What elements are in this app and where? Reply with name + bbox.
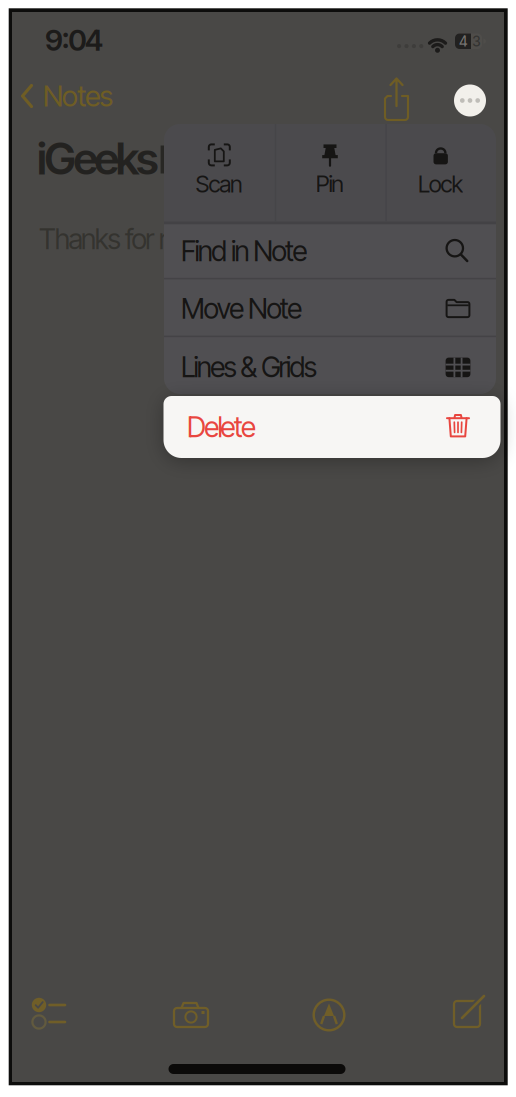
staticText: Pin (316, 170, 344, 198)
button[interactable]: Markup (307, 993, 351, 1037)
button[interactable]: Lock (389, 122, 493, 218)
staticText: Lock (418, 170, 463, 198)
button[interactable]: Lines & Grids (164, 339, 496, 394)
staticText: Move Note (181, 292, 302, 325)
button[interactable]: More (454, 84, 486, 116)
staticText: Find in Note (181, 234, 307, 268)
button[interactable]: Find in Note (164, 223, 496, 278)
staticText: 3 (472, 33, 480, 50)
staticText: 4 (459, 33, 468, 50)
staticText: Delete (187, 410, 256, 444)
button[interactable]: Scan (167, 122, 271, 218)
staticText: Scan (196, 170, 243, 198)
button[interactable]: Camera (167, 994, 215, 1034)
staticText: iGeeks (37, 132, 158, 185)
button[interactable]: Checklist (24, 989, 72, 1037)
staticText: Notes (43, 79, 113, 113)
staticText: Lines & Grids (181, 350, 317, 384)
button[interactable]: Delete (163, 396, 500, 458)
button[interactable]: Pin (278, 122, 382, 218)
button[interactable]: Back (18, 76, 128, 116)
button[interactable]: Move Note (164, 281, 496, 336)
staticText: 9:04 (45, 22, 103, 58)
button[interactable]: Share (374, 75, 418, 123)
button[interactable]: New Note (442, 987, 494, 1035)
staticText: Thanks for reading this (39, 222, 283, 256)
